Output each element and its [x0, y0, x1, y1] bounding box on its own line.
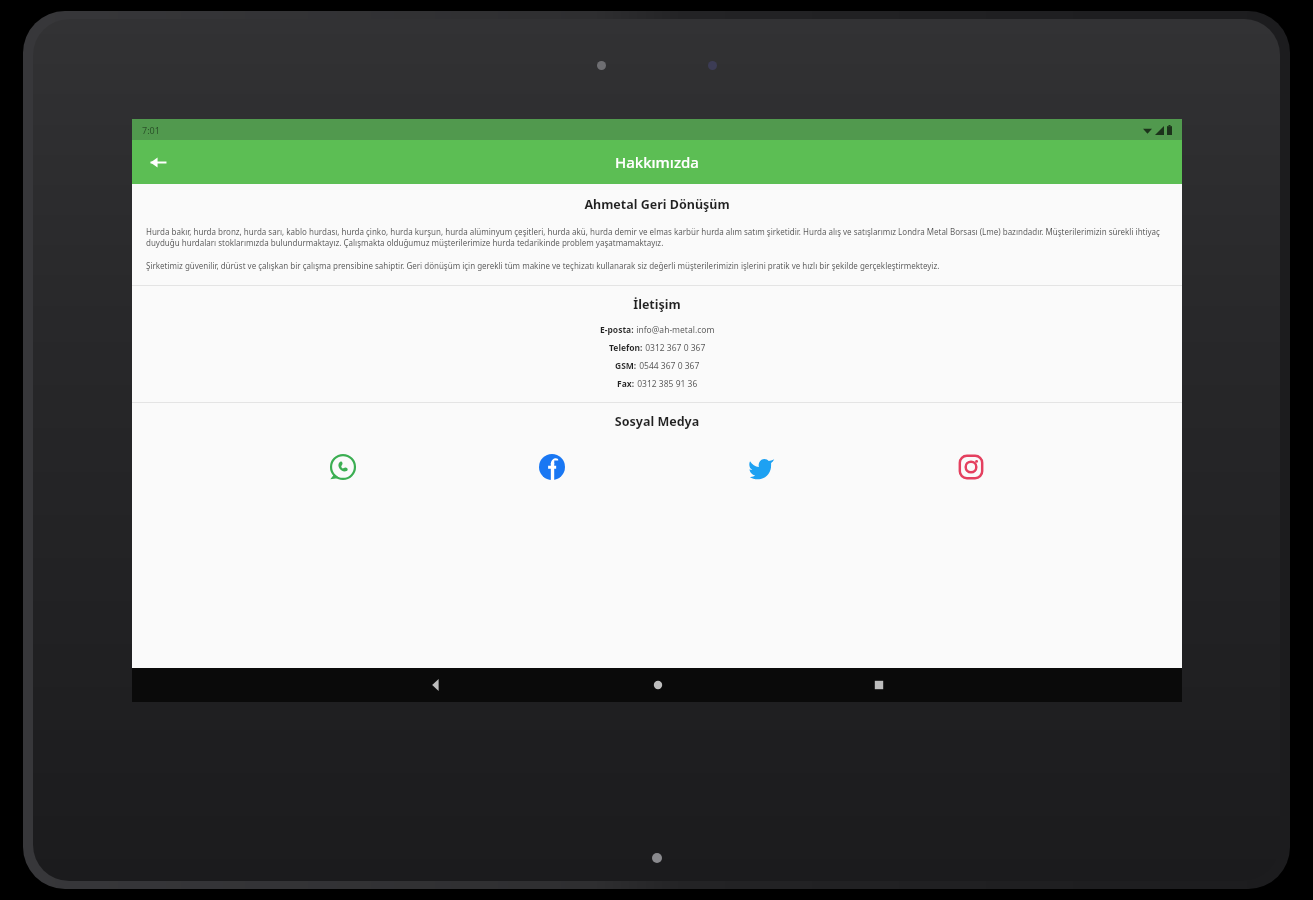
button[interactable]: Recent apps: [864, 670, 894, 700]
staticText: Hakkımızda: [615, 152, 699, 172]
button[interactable]: Home: [643, 670, 673, 700]
staticText: İletişim: [132, 296, 1182, 313]
staticText: 0312 367 0 367: [643, 342, 706, 354]
staticText: 0312 385 91 36: [635, 378, 698, 390]
staticText: Sosyal Medya: [132, 413, 1182, 430]
staticText: E-posta:: [600, 324, 634, 336]
staticText: Fax:: [617, 378, 635, 390]
staticText: Ahmetal Geri Dönüşüm: [132, 196, 1182, 213]
button[interactable]: Facebook: [531, 446, 573, 488]
button[interactable]: WhatsApp: [322, 446, 364, 488]
staticText: 0544 367 0 367: [637, 360, 700, 372]
button[interactable]: Instagram: [950, 446, 992, 488]
staticText: Hurda bakır, hurda bronz, hurda sarı, ka…: [146, 226, 1168, 249]
staticText: info@ah-metal.com: [634, 324, 715, 336]
staticText: GSM:: [615, 360, 637, 372]
button[interactable]: Back: [138, 142, 178, 182]
button[interactable]: Twitter: [741, 446, 783, 488]
staticText: 7:01: [142, 124, 160, 136]
staticText: Telefon:: [609, 342, 643, 354]
button[interactable]: Back: [421, 670, 451, 700]
staticText: Şirketimiz güvenilir, dürüst ve çalışkan…: [146, 260, 1168, 271]
